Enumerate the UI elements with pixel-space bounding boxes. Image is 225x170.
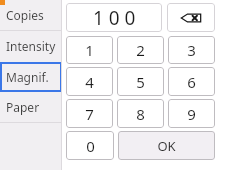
- staticText: 3: [187, 40, 196, 60]
- button[interactable]: 0: [66, 131, 114, 160]
- staticText: Intensity: [6, 38, 56, 54]
- staticText: 6: [187, 72, 196, 92]
- button[interactable]: Intensity: [0, 31, 62, 61]
- staticText: Magnif.: [6, 69, 49, 85]
- button[interactable]: 2: [117, 36, 164, 64]
- button[interactable]: 1: [66, 36, 113, 64]
- staticText: Copies: [6, 7, 44, 23]
- staticText: 0: [86, 136, 95, 156]
- button[interactable]: Copies: [0, 0, 62, 30]
- staticText: 1 0 0: [93, 5, 136, 31]
- button[interactable]: OK: [118, 131, 215, 160]
- staticText: 9: [187, 104, 196, 124]
- button[interactable]: Paper: [0, 92, 62, 122]
- button[interactable]: 6: [168, 67, 215, 96]
- staticText: 4: [85, 72, 94, 92]
- button[interactable]: Backspace: [167, 3, 215, 32]
- staticText: 1: [85, 40, 94, 60]
- button[interactable]: 3: [168, 36, 215, 64]
- staticText: OK: [157, 137, 176, 155]
- staticText: 7: [85, 104, 94, 124]
- staticText: 5: [136, 72, 145, 92]
- staticText: Paper: [6, 99, 40, 115]
- button[interactable]: 4: [66, 67, 113, 96]
- button[interactable]: 7: [66, 99, 113, 128]
- staticText: 8: [136, 104, 145, 124]
- staticText: 2: [136, 40, 145, 60]
- button[interactable]: 8: [117, 99, 164, 128]
- button[interactable]: Magnif.: [0, 62, 62, 92]
- button[interactable]: 5: [117, 67, 164, 96]
- button[interactable]: 9: [168, 99, 215, 128]
